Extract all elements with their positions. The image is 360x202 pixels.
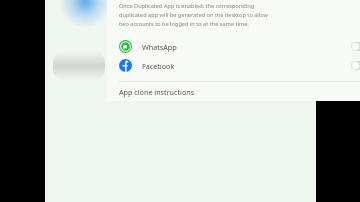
- button[interactable]: Facebook: [107, 56, 360, 75]
- button[interactable]: WhatsApp: [107, 37, 360, 56]
- staticText: WhatsApp: [142, 42, 177, 52]
- staticText: Once Duplicated App is enabled, the corr…: [119, 2, 255, 10]
- button[interactable]: App clone instructions: [107, 82, 360, 101]
- staticText: two accounts to be logged in to at the s…: [119, 20, 249, 28]
- button[interactable]: Toggle: [351, 42, 360, 51]
- button[interactable]: Toggle: [351, 61, 360, 70]
- staticText: App clone instructions: [119, 87, 195, 97]
- staticText: Facebook: [142, 61, 175, 71]
- staticText: duplicated app will be generated on the …: [119, 11, 268, 19]
